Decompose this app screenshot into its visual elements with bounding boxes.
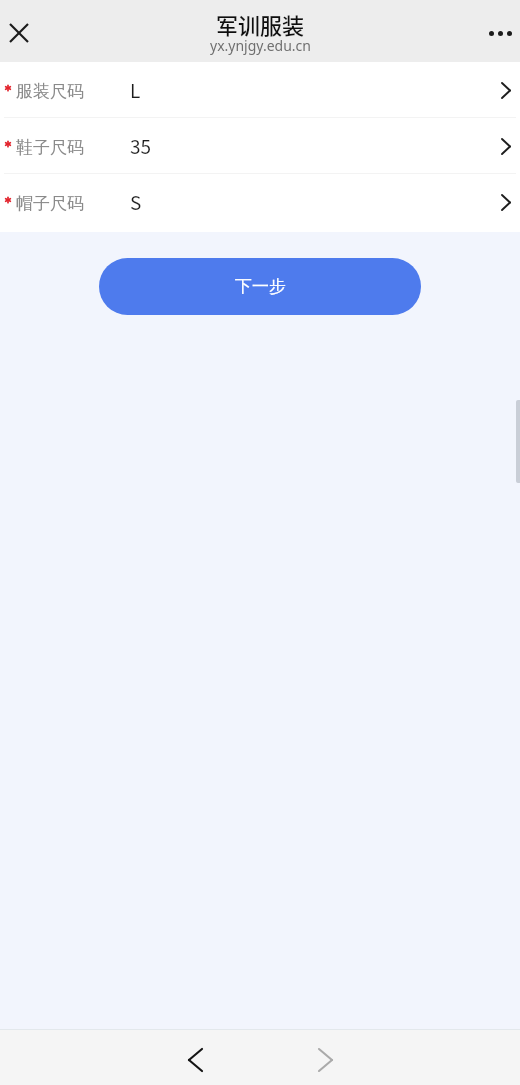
button[interactable]: 下一步 — [99, 258, 421, 315]
staticText: 军训服装 — [216, 8, 305, 40]
button[interactable]: 服装尺码 — [0, 62, 520, 118]
staticText: L — [130, 76, 141, 104]
staticText: S — [130, 188, 142, 216]
button[interactable]: Back — [173, 1038, 217, 1082]
staticText: 35 — [130, 132, 152, 160]
button[interactable]: 鞋子尺码 — [0, 118, 520, 174]
button[interactable]: Close — [0, 2, 38, 64]
staticText: 下一步 — [235, 276, 286, 297]
staticText: 帽子尺码 — [16, 193, 84, 214]
button[interactable]: Forward — [303, 1038, 347, 1082]
staticText: 鞋子尺码 — [16, 137, 84, 158]
staticText: 服装尺码 — [16, 81, 84, 102]
button[interactable]: 帽子尺码 — [0, 174, 520, 230]
button[interactable]: More options — [468, 2, 520, 64]
staticText: yx.ynjgy.edu.cn — [210, 36, 311, 55]
